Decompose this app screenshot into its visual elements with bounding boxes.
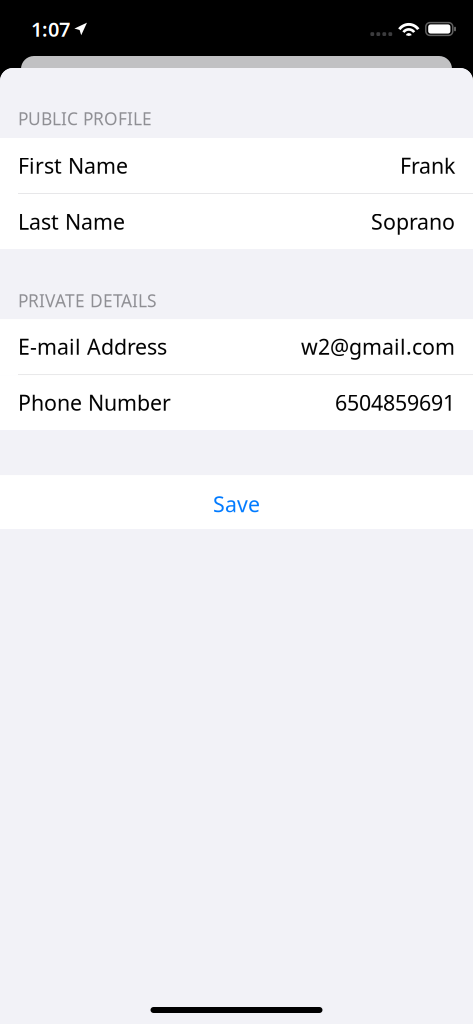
staticText: Soprano <box>371 207 455 236</box>
staticText: Phone Number <box>18 388 171 417</box>
staticText: Frank <box>400 151 455 180</box>
staticText: w2@gmail.com <box>301 332 455 361</box>
staticText: Last Name <box>18 207 125 236</box>
button[interactable]: E-mail Address <box>0 319 473 374</box>
button[interactable]: Save <box>0 475 473 529</box>
staticText: Save <box>213 490 260 518</box>
staticText: PUBLIC PROFILE <box>18 107 152 130</box>
staticText: E-mail Address <box>18 332 167 361</box>
staticText: First Name <box>18 151 128 180</box>
button[interactable]: Phone Number <box>0 375 473 430</box>
staticText: 1:07 <box>31 16 70 42</box>
staticText: PRIVATE DETAILS <box>18 289 157 312</box>
button[interactable]: First Name <box>0 138 473 193</box>
staticText: 6504859691 <box>335 388 455 417</box>
button[interactable]: Last Name <box>0 194 473 249</box>
